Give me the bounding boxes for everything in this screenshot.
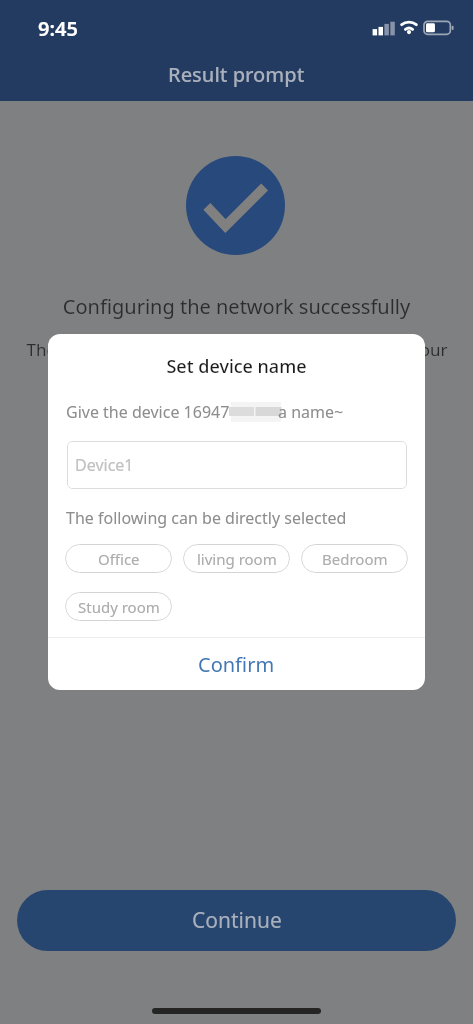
staticText: Configuring the network successfully	[0, 293, 473, 320]
staticText: living room	[197, 549, 277, 569]
button[interactable]: Continue	[17, 890, 456, 951]
button[interactable]: living room	[183, 544, 290, 573]
button[interactable]: Office	[65, 544, 172, 573]
staticText: Result prompt	[168, 61, 305, 88]
staticText: 9:45	[38, 15, 78, 42]
staticText: Set device name	[48, 354, 425, 379]
button[interactable]: Study room	[65, 592, 172, 621]
staticText: Bedroom	[322, 549, 388, 569]
staticText: Study room	[78, 597, 160, 617]
button[interactable]: Confirm	[48, 638, 425, 690]
button[interactable]: Device1	[67, 441, 407, 489]
button[interactable]: Bedroom	[301, 544, 408, 573]
staticText: Device1	[75, 454, 134, 476]
staticText: The following can be directly selected	[66, 507, 347, 529]
other: Success	[186, 156, 285, 255]
staticText: a name~	[278, 401, 344, 423]
staticText: Office	[98, 549, 140, 569]
staticText: The device is added, you can now control…	[26, 338, 448, 361]
staticText: Confirm	[198, 651, 275, 678]
staticText: Give the device 16947	[66, 401, 230, 423]
staticText: Continue	[192, 906, 282, 935]
